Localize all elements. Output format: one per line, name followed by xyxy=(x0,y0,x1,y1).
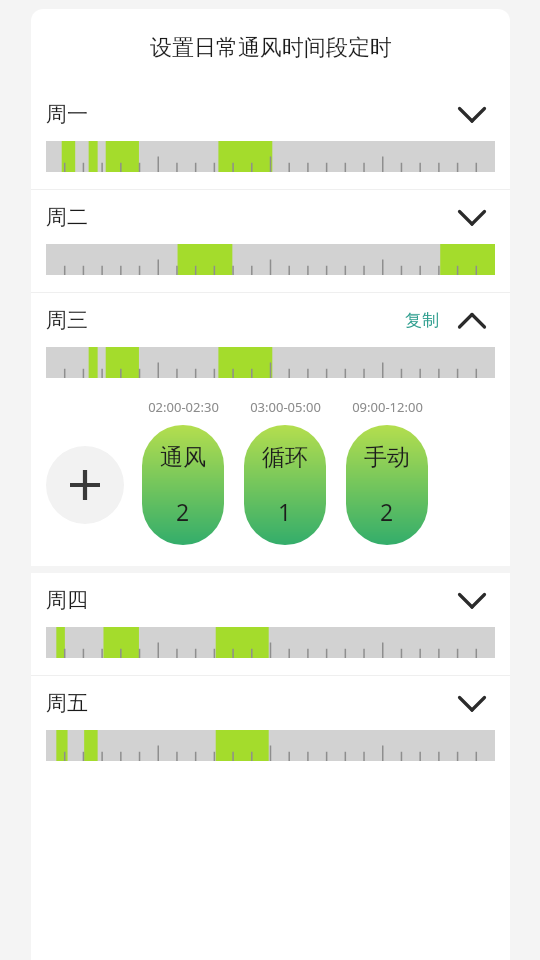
button[interactable]: 通风 xyxy=(142,425,224,545)
staticText: 周四 xyxy=(46,587,88,613)
button[interactable]: 周三 xyxy=(46,293,495,347)
staticText: 周五 xyxy=(46,690,88,716)
staticText: 复制 xyxy=(405,310,439,331)
staticText: 循环 xyxy=(262,443,308,472)
button[interactable]: Add xyxy=(46,446,124,524)
button[interactable]: Expand xyxy=(449,195,495,239)
button[interactable] xyxy=(46,627,495,658)
button[interactable]: 周二 xyxy=(46,190,495,244)
staticText: 设置日常通风时间段定时 xyxy=(150,34,392,62)
staticText: 1 xyxy=(278,496,292,527)
button[interactable]: 周四 xyxy=(46,573,495,627)
button[interactable]: 周一 xyxy=(46,87,495,141)
button[interactable]: 手动 xyxy=(346,425,428,545)
button[interactable]: Expand xyxy=(449,578,495,622)
staticText: 手动 xyxy=(364,443,410,472)
staticText: 2 xyxy=(176,496,190,527)
staticText: 03:00-05:00 xyxy=(250,398,321,416)
staticText: 周三 xyxy=(46,307,88,333)
staticText: 周二 xyxy=(46,204,88,230)
staticText: 周一 xyxy=(46,101,88,127)
staticText: 通风 xyxy=(160,443,206,472)
button[interactable]: Collapse xyxy=(449,298,495,342)
staticText: 02:00-02:30 xyxy=(148,398,219,416)
button[interactable]: 循环 xyxy=(244,425,326,545)
button[interactable] xyxy=(46,244,495,275)
button[interactable] xyxy=(46,141,495,172)
button[interactable]: 复制 xyxy=(399,302,445,339)
staticText: 09:00-12:00 xyxy=(352,398,423,416)
button[interactable]: Expand xyxy=(449,681,495,725)
button[interactable] xyxy=(46,347,495,378)
staticText: 2 xyxy=(380,496,394,527)
button[interactable]: Expand xyxy=(449,92,495,136)
button[interactable] xyxy=(46,730,495,761)
button[interactable]: 周五 xyxy=(46,676,495,730)
